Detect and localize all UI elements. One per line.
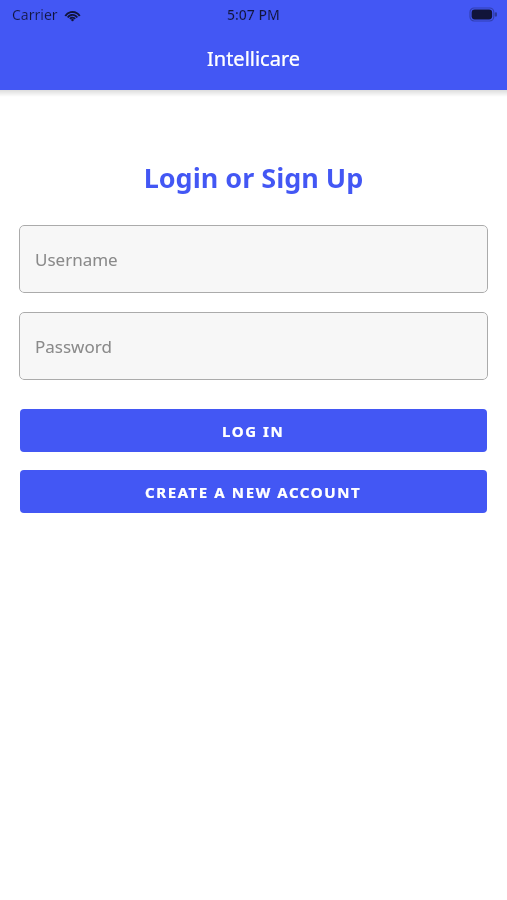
button[interactable]: Username bbox=[19, 225, 488, 293]
staticText: Username bbox=[35, 248, 118, 271]
button[interactable]: Password bbox=[19, 312, 488, 380]
staticText: LOG IN bbox=[222, 421, 285, 441]
staticText: Intellicare bbox=[207, 45, 301, 72]
staticText: Login or Sign Up bbox=[0, 159, 507, 196]
button[interactable]: CREATE A NEW ACCOUNT bbox=[20, 470, 487, 513]
staticText: Password bbox=[35, 335, 112, 358]
staticText: 5:07 PM bbox=[227, 5, 280, 24]
other: Wi-Fi signal bbox=[64, 8, 81, 21]
button[interactable]: LOG IN bbox=[20, 409, 487, 452]
other: Battery full bbox=[470, 8, 497, 21]
staticText: CREATE A NEW ACCOUNT bbox=[145, 482, 362, 502]
staticText: Carrier bbox=[12, 5, 58, 24]
